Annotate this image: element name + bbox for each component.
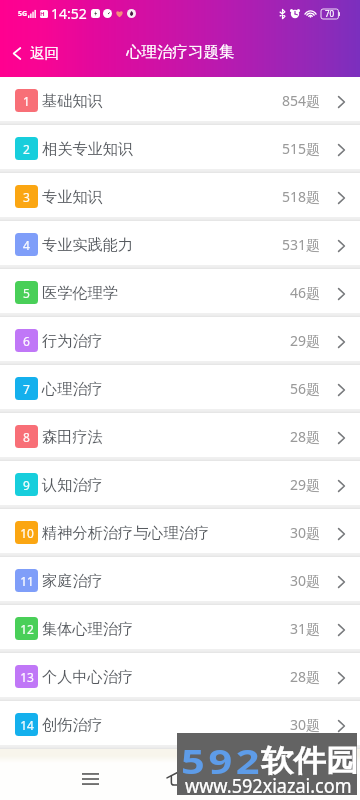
button[interactable]: 8 [0, 413, 360, 457]
staticText: 4 [23, 237, 30, 253]
staticText: 9 [23, 477, 30, 493]
button[interactable]: 14 [0, 701, 360, 745]
button[interactable]: Home [158, 758, 199, 799]
staticText: 31题 [290, 619, 321, 638]
button[interactable]: 返回 [0, 35, 74, 69]
staticText: 46题 [290, 283, 321, 302]
button[interactable]: 9 [0, 461, 360, 505]
staticText: 7 [23, 381, 30, 397]
staticText: 心理治疗 [42, 379, 103, 398]
staticText: 30题 [290, 571, 321, 590]
button[interactable]: 12 [0, 605, 360, 649]
staticText: 精神分析治疗与心理治疗 [42, 523, 210, 542]
staticText: 56题 [290, 379, 321, 398]
button[interactable]: 11 [0, 557, 360, 601]
staticText: 592 [181, 738, 264, 784]
staticText: 软件园 [261, 742, 359, 779]
staticText: 854题 [282, 91, 321, 110]
staticText: 515题 [282, 139, 321, 158]
staticText: 30题 [290, 523, 321, 542]
staticText: HD [40, 10, 48, 18]
staticText: 28题 [290, 667, 321, 686]
staticText: 8 [23, 429, 30, 445]
staticText: 1 [23, 93, 30, 109]
staticText: 29题 [290, 331, 321, 350]
button[interactable]: 5 [0, 269, 360, 313]
staticText: 14:52 [51, 4, 87, 23]
staticText: 3 [23, 189, 30, 205]
staticText: 30题 [290, 715, 321, 734]
staticText: 2 [23, 141, 30, 157]
staticText: 家庭治疗 [42, 571, 103, 590]
staticText: 5 [23, 285, 30, 301]
staticText: 28题 [290, 427, 321, 446]
staticText: 专业知识 [42, 187, 103, 206]
staticText: 心理治疗习题集 [126, 42, 235, 62]
staticText: 相关专业知识 [42, 139, 134, 158]
staticText: 5G [18, 9, 28, 19]
staticText: 12 [20, 621, 34, 637]
staticText: 返回 [30, 44, 60, 62]
staticText: www.592xiazai.com [185, 773, 352, 799]
button[interactable]: 3 [0, 173, 360, 217]
staticText: 创伤治疗 [42, 715, 103, 734]
staticText: 531题 [282, 235, 321, 254]
staticText: 集体心理治疗 [42, 619, 134, 638]
staticText: 基础知识 [42, 91, 103, 110]
button[interactable]: 10 [0, 509, 360, 553]
staticText: 森田疗法 [42, 427, 103, 446]
button[interactable]: 2 [0, 125, 360, 169]
button[interactable]: 7 [0, 365, 360, 409]
button[interactable]: Recents [70, 758, 111, 799]
button[interactable]: 13 [0, 653, 360, 697]
staticText: 13 [20, 669, 34, 685]
staticText: 10 [20, 525, 34, 541]
staticText: 14 [20, 717, 34, 733]
staticText: 70 [325, 8, 335, 19]
staticText: 行为治疗 [42, 331, 103, 350]
staticText: 29题 [290, 475, 321, 494]
staticText: 认知治疗 [42, 475, 103, 494]
staticText: 医学伦理学 [42, 283, 118, 302]
staticText: 专业实践能力 [42, 235, 134, 254]
button[interactable]: 1 [0, 77, 360, 121]
staticText: 6 [23, 333, 30, 349]
button[interactable]: 4 [0, 221, 360, 265]
staticText: 518题 [282, 187, 321, 206]
staticText: 个人中心治疗 [42, 667, 134, 686]
staticText: 11 [20, 573, 34, 589]
button[interactable]: 6 [0, 317, 360, 361]
